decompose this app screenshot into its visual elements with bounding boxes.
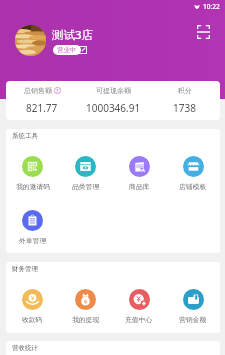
staticText: 积分 bbox=[178, 86, 192, 95]
button[interactable]: 品类管理 bbox=[59, 156, 112, 191]
button[interactable]: 充值中心 bbox=[112, 289, 166, 324]
button[interactable]: 可提现余额 bbox=[78, 81, 149, 115]
button[interactable]: Scan QR code bbox=[197, 25, 210, 39]
staticText: 营业中 bbox=[57, 46, 77, 54]
staticText: 我的提现 bbox=[72, 315, 100, 324]
staticText: 10:22 bbox=[203, 2, 220, 11]
staticText: 充值中心 bbox=[125, 315, 153, 324]
staticText: 1000346.91 bbox=[86, 101, 141, 115]
staticText: 品类管理 bbox=[72, 182, 100, 191]
button[interactable]: 积分 bbox=[149, 81, 220, 115]
button[interactable]: 店铺模板 bbox=[166, 156, 220, 191]
button[interactable]: 营业中 bbox=[53, 45, 81, 55]
staticText: 1738 bbox=[173, 101, 196, 115]
button[interactable]: 商品库 bbox=[112, 156, 166, 191]
staticText: ? bbox=[56, 87, 59, 94]
staticText: 总销售额 bbox=[24, 86, 52, 95]
staticText: 营收统计 bbox=[12, 344, 38, 352]
staticText: 可提现余额 bbox=[96, 86, 131, 95]
staticText: 我的邀请码 bbox=[16, 182, 50, 191]
button[interactable]: Edit shop bbox=[79, 46, 87, 54]
staticText: 系统工具 bbox=[12, 132, 38, 140]
button[interactable]: 我的提现 bbox=[59, 289, 112, 324]
button[interactable]: 营销金额 bbox=[166, 289, 220, 324]
button[interactable]: 我的邀请码 bbox=[6, 156, 59, 191]
staticText: 外单管理 bbox=[19, 236, 47, 245]
staticText: 收款码 bbox=[22, 315, 43, 324]
button[interactable]: 外单管理 bbox=[6, 210, 59, 245]
staticText: 营销金额 bbox=[179, 315, 207, 324]
staticText: 测试3店 bbox=[52, 27, 94, 43]
staticText: 821.77 bbox=[26, 101, 58, 115]
staticText: 商品库 bbox=[129, 182, 150, 191]
button[interactable]: 总销售额 bbox=[6, 81, 78, 115]
staticText: 店铺模板 bbox=[179, 182, 207, 191]
staticText: 财务管理 bbox=[12, 265, 38, 273]
button[interactable]: 收款码 bbox=[6, 289, 59, 324]
